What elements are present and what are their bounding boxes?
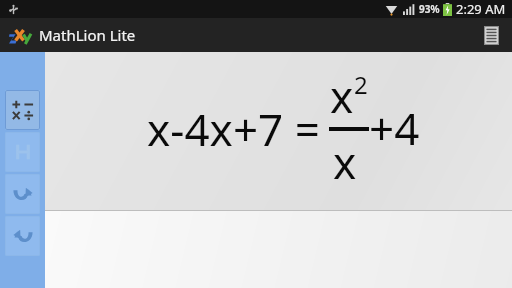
button[interactable]: Undo [5, 216, 40, 256]
other: MathLion logo [9, 27, 31, 44]
staticText: x-4x+7 = [147, 99, 320, 159]
staticText: 2 [354, 68, 368, 101]
staticText: x [333, 132, 357, 192]
button[interactable]: History list [478, 22, 504, 48]
staticText: 2:29 AM [456, 0, 506, 18]
button[interactable]: Constants [5, 132, 40, 172]
button[interactable]: Arithmetic operations [5, 90, 40, 130]
button[interactable]: Redo [5, 174, 40, 214]
staticText: x [330, 66, 354, 126]
staticText: 93% [419, 2, 440, 16]
staticText: +4 [369, 98, 420, 158]
staticText: MathLion Lite [39, 25, 136, 45]
